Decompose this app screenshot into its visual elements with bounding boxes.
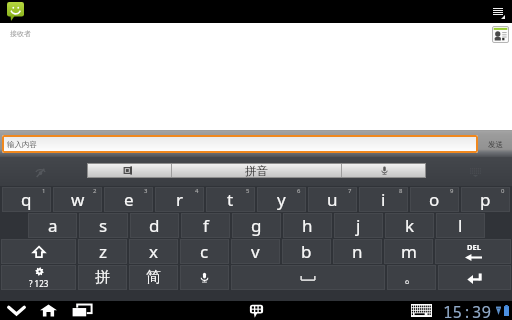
staticText: d (149, 214, 160, 237)
staticText: o (429, 188, 440, 211)
staticText: e (124, 188, 134, 211)
button[interactable]: b (282, 239, 331, 264)
staticText: ? 123 (29, 278, 49, 289)
button[interactable]: s (79, 213, 128, 238)
staticText: 。 (404, 268, 419, 287)
button[interactable]: x (129, 239, 178, 264)
staticText: 拼音 (245, 164, 268, 178)
button[interactable]: Back (1, 301, 32, 320)
button[interactable]: 输入内容 (2, 135, 478, 153)
staticText: j (356, 214, 361, 237)
staticText: k (405, 214, 415, 237)
staticText: f (203, 214, 209, 237)
staticText: h (302, 214, 313, 237)
button[interactable]: 。 (387, 265, 436, 290)
staticText: 9 (450, 187, 454, 195)
button[interactable]: o (410, 187, 459, 212)
staticText: b (301, 240, 312, 263)
button[interactable]: f (181, 213, 230, 238)
button[interactable]: 发送 (478, 131, 512, 157)
button[interactable]: g (232, 213, 281, 238)
button[interactable]: e (104, 187, 153, 212)
button[interactable]: Pick contact (491, 25, 510, 44)
staticText: 6 (297, 187, 301, 195)
staticText: x (149, 240, 158, 263)
staticText: 1 (42, 187, 46, 195)
button[interactable]: Voice input (180, 265, 229, 290)
staticText: g (251, 214, 262, 237)
button[interactable]: Home (33, 301, 64, 320)
staticText: y (277, 188, 286, 211)
button[interactable]: a (28, 213, 77, 238)
staticText: p (480, 188, 491, 211)
staticText: s (99, 214, 108, 237)
button[interactable]: z (78, 239, 127, 264)
button[interactable]: Enter (438, 265, 511, 290)
button[interactable]: q (2, 187, 51, 212)
staticText: a (48, 214, 58, 237)
staticText: c (200, 240, 209, 263)
button[interactable]: p (461, 187, 510, 212)
staticText: n (352, 240, 363, 263)
button[interactable]: Hide candidates (32, 164, 48, 180)
staticText: u (327, 188, 338, 211)
staticText: 2 (93, 187, 97, 195)
button[interactable]: h (283, 213, 332, 238)
staticText: 简 (146, 268, 161, 287)
button[interactable]: m (384, 239, 433, 264)
staticText: w (71, 188, 85, 211)
staticText: m (401, 240, 417, 263)
button[interactable]: Messaging (0, 0, 30, 23)
staticText: 3 (144, 187, 148, 195)
button[interactable]: u (308, 187, 357, 212)
button[interactable]: More options (484, 0, 512, 23)
button[interactable]: t (206, 187, 255, 212)
staticText: r (176, 188, 184, 211)
button[interactable]: Voice input (342, 163, 426, 178)
button[interactable]: 拼 (78, 265, 127, 290)
button[interactable]: Space (231, 265, 385, 290)
button[interactable]: l (436, 213, 485, 238)
staticText: 0 (501, 187, 505, 195)
button[interactable]: i (359, 187, 408, 212)
button[interactable]: 简 (129, 265, 178, 290)
staticText: i (381, 188, 386, 211)
staticText: v (251, 240, 260, 263)
button[interactable]: 拼音 (172, 163, 341, 178)
staticText: DEL (467, 242, 481, 252)
button[interactable]: Switch keyboard (87, 163, 171, 178)
button[interactable]: Shift (1, 239, 76, 264)
button[interactable]: c (180, 239, 229, 264)
staticText: 4 (195, 187, 199, 195)
staticText: t (227, 188, 234, 211)
button[interactable]: Recent apps (66, 301, 97, 320)
staticText: 7 (348, 187, 352, 195)
button[interactable]: v (231, 239, 280, 264)
button[interactable]: w (53, 187, 102, 212)
staticText: z (99, 240, 107, 263)
staticText: l (458, 214, 463, 237)
staticText: 15:39 (443, 301, 492, 320)
staticText: 输入内容 (7, 140, 37, 149)
button[interactable]: Show keyboard (243, 301, 269, 320)
button[interactable]: Delete (435, 239, 511, 264)
button[interactable]: r (155, 187, 204, 212)
staticText: 5 (246, 187, 250, 195)
button[interactable]: k (385, 213, 434, 238)
button[interactable]: d (130, 213, 179, 238)
staticText: 8 (399, 187, 403, 195)
staticText: 拼 (95, 268, 110, 287)
staticText: q (21, 188, 32, 211)
button[interactable]: Symbols (1, 265, 76, 290)
staticText: 发送 (488, 140, 503, 149)
button[interactable]: j (334, 213, 383, 238)
button[interactable]: y (257, 187, 306, 212)
staticText: 接收者 (10, 29, 31, 38)
button[interactable]: n (333, 239, 382, 264)
